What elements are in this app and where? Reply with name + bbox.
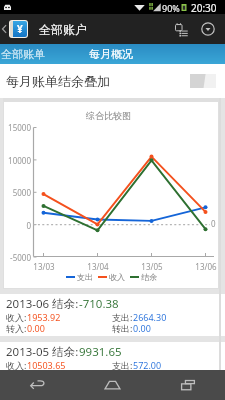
staticText: 5000 — [4, 187, 31, 198]
staticText: 支出: — [112, 359, 133, 371]
staticText: 0.00 — [27, 322, 45, 334]
button[interactable]: 全部账单 — [0, 44, 67, 64]
staticText: 收入: — [6, 359, 27, 371]
staticText: 572.00 — [133, 359, 162, 371]
staticText: 13/03 — [28, 261, 60, 272]
staticText: 综合比较图 — [86, 110, 131, 121]
staticText: 每月账单结余叠加 — [6, 73, 110, 89]
staticText: 9931.65 — [79, 344, 122, 360]
staticText: 结余 — [141, 272, 157, 282]
staticText: 0.00 — [133, 322, 151, 334]
staticText: 2664.30 — [133, 311, 167, 323]
staticText: 每月概况 — [89, 47, 133, 61]
staticText: 2013-05 结余: — [6, 344, 79, 360]
staticText: 0.00 — [27, 370, 45, 382]
staticText: 转入: — [6, 322, 27, 334]
staticText: 10503.65 — [27, 359, 66, 371]
button[interactable]: Recent apps — [150, 370, 225, 400]
staticText: 收入 — [109, 272, 125, 282]
staticText: 10000 — [4, 155, 31, 166]
button[interactable]: Statistics — [168, 14, 194, 44]
button[interactable]: 每月账单结余叠加 — [0, 64, 225, 98]
staticText: -710.38 — [79, 296, 119, 312]
button[interactable]: Back — [0, 370, 75, 400]
staticText: 支出: — [112, 311, 133, 323]
staticText: 0 — [211, 218, 216, 229]
staticText: 2013-06 结余: — [6, 296, 79, 312]
button[interactable]: 每月概况 — [67, 44, 155, 64]
staticText: 收入: — [6, 311, 27, 323]
staticText: 全部账户 — [39, 22, 87, 37]
staticText: 13/04 — [82, 261, 114, 272]
staticText: ¥ — [17, 22, 23, 36]
button[interactable]: 2013-06 结余: — [0, 294, 225, 336]
staticText: 20:30 — [191, 1, 217, 15]
button[interactable]: More options — [194, 14, 222, 44]
staticText: 转出: — [112, 370, 133, 382]
staticText: 支出 — [77, 272, 93, 282]
button[interactable]: Up — [0, 20, 87, 38]
staticText: -5000 — [4, 252, 31, 263]
staticText: 13/06 — [190, 261, 222, 272]
staticText: 13/05 — [136, 261, 168, 272]
staticText: 15000 — [4, 122, 31, 133]
staticText: 0 — [4, 220, 31, 231]
staticText: 转出: — [112, 322, 133, 334]
staticText: 1953.92 — [27, 311, 61, 323]
staticText: 90% — [162, 2, 180, 14]
button[interactable]: Home — [75, 370, 150, 400]
staticText: 全部账单 — [1, 47, 45, 61]
button[interactable]: 2013-05 结余: — [0, 342, 225, 384]
